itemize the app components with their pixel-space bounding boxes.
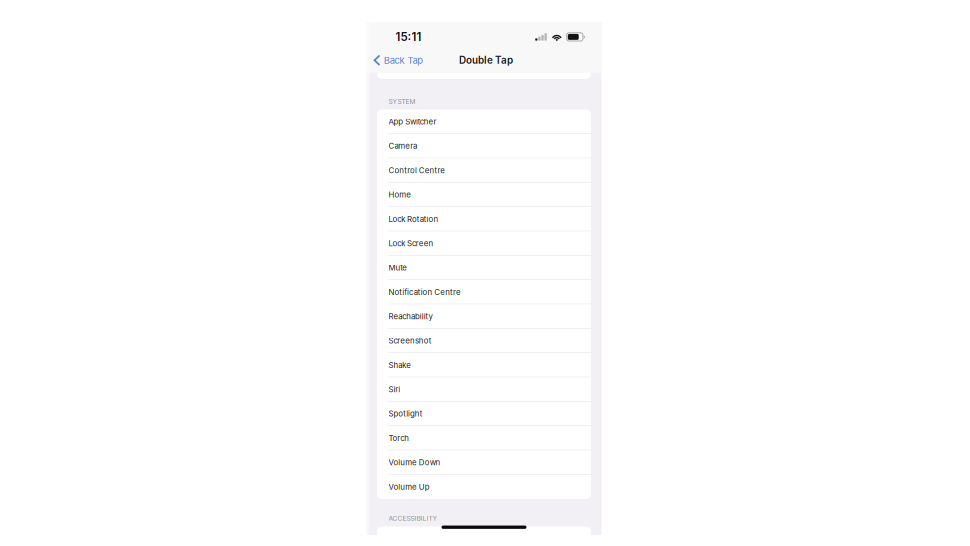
staticText: Control Centre [388, 166, 445, 175]
staticText: Camera [388, 141, 417, 151]
staticText: Lock Rotation [388, 214, 438, 224]
button[interactable]: Home [377, 182, 591, 207]
button[interactable]: Volume Up [377, 475, 591, 499]
button[interactable]: Screenshot [377, 329, 591, 353]
staticText: Double Tap [459, 54, 513, 66]
button[interactable]: Siri [377, 377, 591, 401]
button[interactable]: Mute [377, 255, 591, 280]
staticText: Back Tap [384, 54, 423, 66]
button[interactable]: Torch [377, 426, 591, 450]
staticText: Lock Screen [388, 239, 434, 248]
staticText: Torch [388, 433, 409, 443]
button[interactable]: Spotlight [377, 402, 591, 426]
button[interactable]: Back Tap [366, 51, 429, 69]
button[interactable]: Reachability [377, 304, 591, 328]
staticText: Siri [388, 385, 400, 394]
staticText: Volume Up [388, 482, 430, 491]
button[interactable]: Shake [377, 353, 591, 377]
staticText: Spotlight [388, 409, 423, 418]
staticText: Mute [388, 263, 407, 272]
staticText: Reachability [388, 312, 432, 321]
staticText: SYSTEM [388, 98, 415, 106]
staticText: Shake [388, 360, 411, 370]
staticText: 15:11 [395, 30, 421, 44]
staticText: Screenshot [388, 336, 432, 345]
button[interactable]: Volume Down [377, 450, 591, 475]
button[interactable]: App Switcher [377, 109, 591, 134]
button[interactable]: Control Centre [377, 158, 591, 182]
button[interactable]: Notification Centre [377, 280, 591, 304]
staticText: Notification Centre [388, 287, 461, 297]
staticText: ACCESSIBILITY [388, 514, 437, 522]
staticText: App Switcher [388, 117, 436, 126]
button[interactable]: Camera [377, 134, 591, 158]
button[interactable]: Lock Screen [377, 231, 591, 255]
staticText: Volume Down [388, 458, 441, 467]
button[interactable]: Lock Rotation [377, 207, 591, 231]
staticText: Home [388, 190, 411, 199]
